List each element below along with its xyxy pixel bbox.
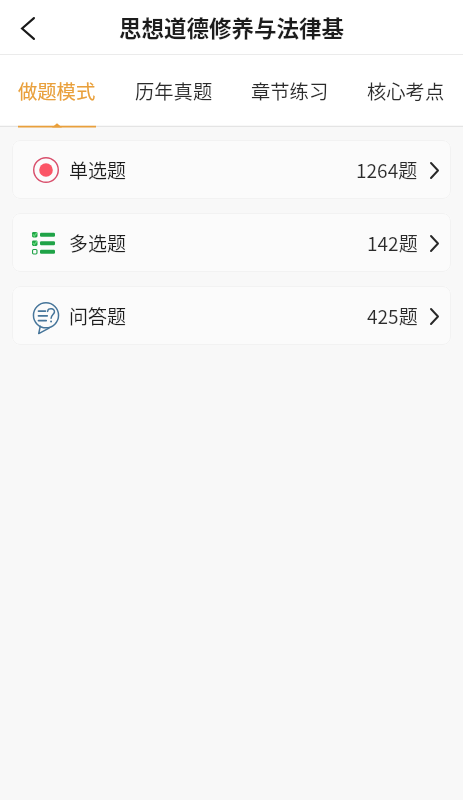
- button[interactable]: 核心考点: [361, 60, 451, 122]
- staticText: 做题模式: [18, 77, 96, 105]
- button[interactable]: 问答题: [12, 286, 451, 345]
- staticText: 多选题: [69, 229, 127, 257]
- staticText: 425题: [367, 302, 418, 330]
- staticText: 历年真题: [135, 77, 213, 105]
- button[interactable]: 多选题: [12, 213, 451, 272]
- button[interactable]: 章节练习: [245, 60, 335, 122]
- staticText: 142题: [367, 229, 418, 257]
- button[interactable]: 单选题: [12, 140, 451, 199]
- staticText: 章节练习: [251, 77, 329, 105]
- button[interactable]: 历年真题: [129, 60, 219, 122]
- button[interactable]: Back: [0, 0, 56, 55]
- staticText: 问答题: [69, 302, 127, 330]
- staticText: 单选题: [69, 156, 127, 184]
- staticText: 思想道德修养与法律基: [119, 11, 345, 44]
- staticText: 1264题: [356, 156, 418, 184]
- staticText: 核心考点: [367, 77, 445, 105]
- button[interactable]: 做题模式: [12, 60, 102, 122]
